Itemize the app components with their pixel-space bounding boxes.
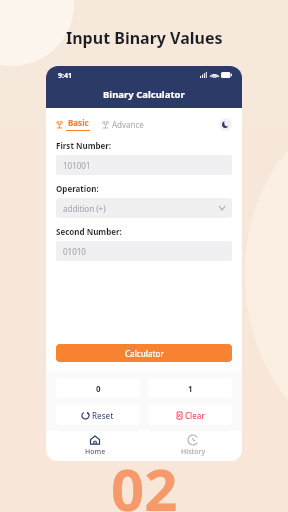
staticText: Advance (112, 119, 144, 130)
staticText: 0 (96, 383, 101, 394)
button[interactable]: Reset (56, 405, 140, 425)
staticText: addition (+) (63, 203, 106, 214)
button[interactable]: 0 (56, 378, 140, 398)
staticText: Calculator (125, 348, 164, 359)
button[interactable]: Advance (102, 119, 144, 130)
staticText: 101001 (63, 160, 91, 171)
button[interactable]: 1 (148, 378, 232, 398)
staticText: 01010 (63, 246, 86, 257)
staticText: Binary Calculator (103, 88, 185, 101)
staticText: Operation: (56, 183, 99, 194)
staticText: 1 (188, 383, 193, 394)
button[interactable]: 101001 (56, 155, 232, 175)
staticText: First Number: (56, 140, 112, 151)
button[interactable]: Calculator (56, 344, 232, 362)
staticText: Input Binary Values (66, 27, 223, 49)
button[interactable]: Dark mode (219, 118, 232, 131)
staticText: Second Number: (56, 226, 122, 237)
staticText: Reset (92, 410, 114, 421)
button[interactable]: addition (+) (56, 198, 232, 218)
button[interactable]: Clear (148, 405, 232, 425)
button[interactable]: 01010 (56, 241, 232, 261)
staticText: Home (85, 447, 106, 457)
staticText: Clear (185, 410, 205, 421)
button[interactable]: History (144, 431, 242, 461)
staticText: 02 (111, 449, 178, 512)
staticText: History (181, 447, 206, 457)
button[interactable]: Basic (56, 117, 90, 131)
staticText: Basic (68, 117, 89, 128)
button[interactable]: Home (46, 431, 144, 461)
staticText: 9:41 (58, 71, 72, 81)
